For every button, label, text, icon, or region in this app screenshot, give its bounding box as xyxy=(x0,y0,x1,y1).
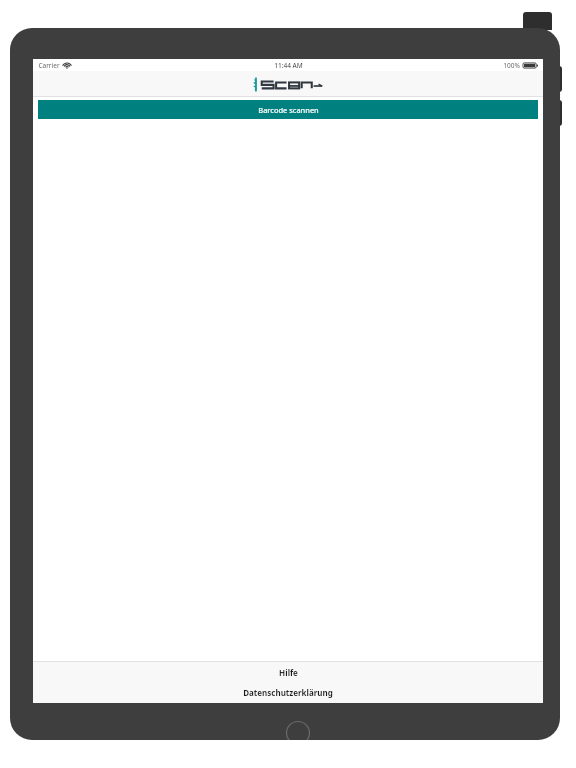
staticText: Datenschutzerklärung xyxy=(243,687,333,698)
staticText: Barcode scannen xyxy=(258,105,319,115)
staticText: 11:44 AM xyxy=(274,61,303,70)
button[interactable]: Barcode scannen xyxy=(38,100,538,119)
staticText: 100% xyxy=(503,61,520,70)
button[interactable]: Hilfe xyxy=(33,662,543,682)
button[interactable]: Datenschutzerklärung xyxy=(33,682,543,703)
staticText: Carrier xyxy=(38,61,60,70)
staticText: Hilfe xyxy=(279,667,298,678)
button[interactable]: iScan xyxy=(250,74,326,94)
